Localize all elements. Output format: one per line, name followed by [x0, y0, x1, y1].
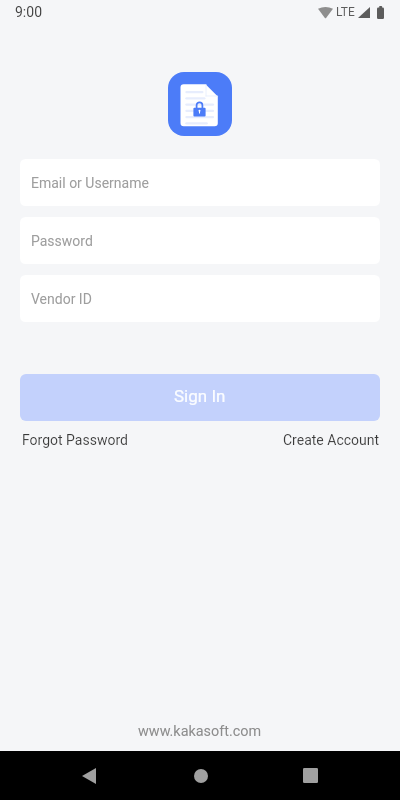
staticText: LTE [336, 5, 355, 19]
button[interactable]: Forgot Password [20, 430, 128, 450]
staticText: Sign In [174, 386, 226, 406]
button[interactable]: Recent apps [286, 751, 335, 800]
button[interactable]: Home [176, 751, 225, 800]
button[interactable]: Password [20, 217, 380, 264]
staticText: 9:00 [15, 4, 42, 20]
button[interactable]: Create Account [283, 430, 380, 450]
button[interactable]: Sign In [20, 374, 380, 421]
staticText: www.kakasoft.com [138, 723, 262, 740]
button[interactable]: Vendor ID [20, 275, 380, 322]
staticText: Create Account [283, 432, 380, 448]
staticText: Vendor ID [31, 291, 92, 307]
button[interactable]: Back [64, 751, 113, 800]
button[interactable]: Email or Username [20, 159, 380, 206]
staticText: Forgot Password [22, 432, 128, 448]
staticText: Email or Username [31, 175, 149, 191]
staticText: Password [31, 233, 93, 249]
